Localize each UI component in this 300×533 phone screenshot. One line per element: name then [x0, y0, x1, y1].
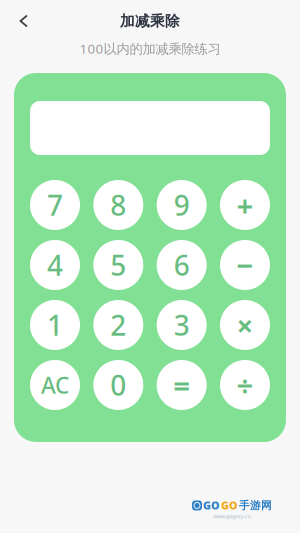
staticText: 4 — [47, 246, 63, 284]
button[interactable]: = — [157, 360, 207, 410]
staticText: 7 — [47, 186, 63, 224]
button[interactable]: 9 — [157, 180, 207, 230]
button[interactable]: 5 — [93, 240, 143, 290]
staticText: 手游网 — [239, 499, 272, 512]
button[interactable]: 2 — [93, 300, 143, 350]
staticText: 2 — [110, 306, 126, 344]
button[interactable]: × — [220, 300, 270, 350]
staticText: www.gogoxy.cn — [213, 512, 251, 520]
button[interactable]: + — [220, 180, 270, 230]
staticText: 9 — [174, 186, 190, 224]
staticText: 8 — [110, 186, 126, 224]
staticText: ÷ — [236, 365, 253, 404]
staticText: AC — [41, 370, 69, 400]
button[interactable]: 0 — [93, 360, 143, 410]
button[interactable]: 4 — [30, 240, 80, 290]
staticText: = — [173, 365, 190, 404]
staticText: GO — [203, 498, 220, 513]
staticText: 3 — [174, 306, 190, 344]
staticText: 6 — [174, 246, 190, 284]
staticText: 5 — [110, 246, 126, 284]
staticText: + — [236, 185, 253, 224]
staticText: 加减乘除 — [120, 12, 180, 30]
button[interactable]: AC — [30, 360, 80, 410]
staticText: × — [236, 305, 253, 344]
button[interactable]: − — [220, 240, 270, 290]
button[interactable]: 1 — [30, 300, 80, 350]
staticText: 1 — [47, 306, 63, 344]
staticText: 100以内的加减乘除练习 — [79, 40, 220, 57]
staticText: 0 — [110, 366, 126, 404]
button[interactable]: ÷ — [220, 360, 270, 410]
button[interactable]: Back — [0, 4, 48, 38]
button[interactable]: 6 — [157, 240, 207, 290]
staticText: − — [236, 245, 253, 284]
button[interactable]: 7 — [30, 180, 80, 230]
button[interactable]: 8 — [93, 180, 143, 230]
button[interactable]: 3 — [157, 300, 207, 350]
staticText: GO — [221, 498, 238, 513]
